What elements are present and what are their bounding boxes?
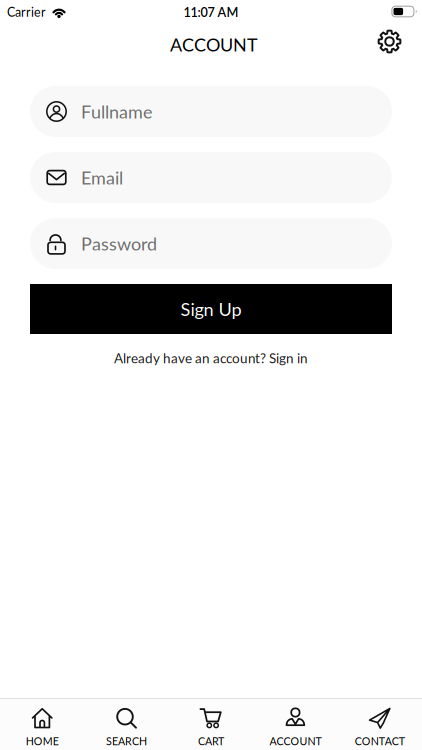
button[interactable]: Fullname [30, 86, 392, 137]
staticText: Sign Up [180, 298, 241, 320]
staticText: Fullname [81, 101, 153, 122]
button[interactable]: CONTACT [338, 707, 422, 748]
button[interactable]: Email [30, 152, 392, 203]
staticText: ACCOUNT [269, 735, 321, 748]
staticText: SEARCH [106, 735, 147, 748]
button[interactable]: Sign Up [30, 284, 392, 334]
button[interactable]: Already have an account? Sign in [114, 350, 308, 366]
staticText: Password [81, 233, 157, 254]
staticText: Already have an account? Sign in [114, 350, 308, 366]
staticText: Carrier [7, 5, 46, 19]
staticText: ACCOUNT [170, 34, 258, 55]
button[interactable]: ACCOUNT [253, 707, 338, 748]
button[interactable]: CART [169, 707, 253, 748]
staticText: CONTACT [355, 735, 405, 748]
button[interactable]: SEARCH [84, 707, 169, 748]
staticText: HOME [26, 735, 59, 748]
staticText: 11:07 AM [183, 4, 238, 20]
staticText: CART [198, 735, 224, 748]
button[interactable]: Settings [377, 29, 402, 54]
button[interactable]: Password [30, 218, 392, 269]
button[interactable]: HOME [0, 707, 84, 748]
staticText: Email [81, 167, 123, 188]
